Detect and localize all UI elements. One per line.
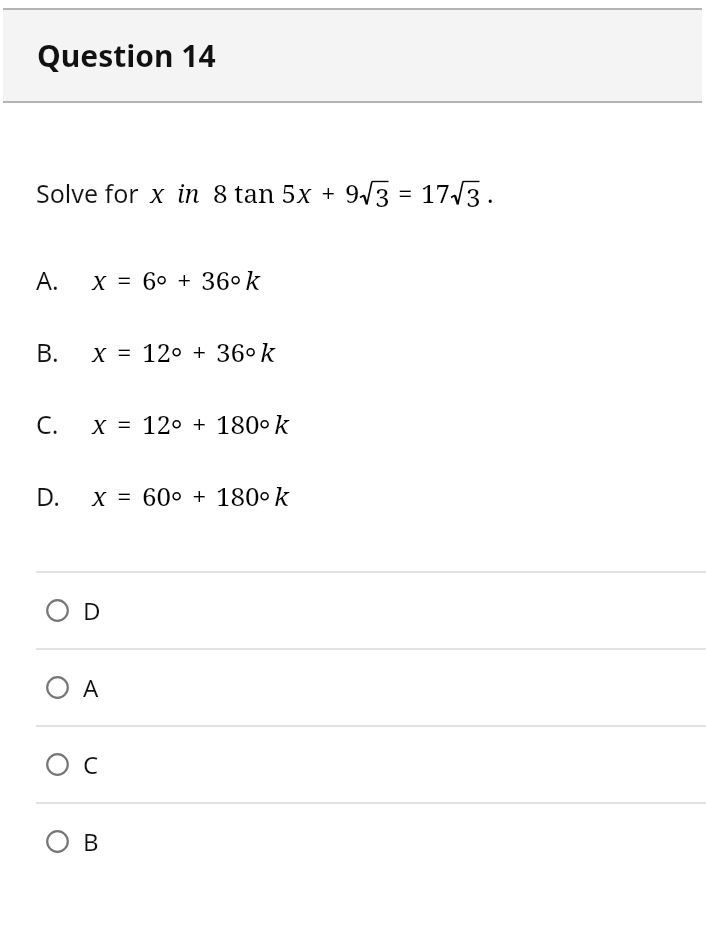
staticText: B: [83, 825, 99, 858]
staticText: +: [192, 478, 207, 513]
button[interactable]: D: [0, 573, 706, 648]
button[interactable]: Question 14: [3, 8, 702, 103]
staticText: =: [117, 406, 132, 441]
staticText: 180: [216, 406, 260, 441]
staticText: +: [177, 262, 192, 297]
staticText: k: [274, 478, 289, 513]
staticText: 60: [142, 478, 172, 513]
staticText: =: [117, 262, 132, 297]
staticText: 6: [142, 262, 157, 297]
staticText: B.: [36, 335, 59, 369]
staticText: C: [83, 748, 99, 781]
staticText: 12: [142, 406, 172, 441]
staticText: =: [117, 334, 132, 369]
staticText: +: [192, 334, 207, 369]
staticText: k: [274, 406, 289, 441]
staticText: 17: [421, 175, 451, 210]
button[interactable]: B: [0, 804, 706, 879]
staticText: 12: [142, 334, 172, 369]
staticText: 3: [375, 179, 390, 207]
staticText: =: [117, 478, 132, 513]
staticText: +: [321, 175, 336, 210]
staticText: k: [260, 334, 275, 369]
staticText: x: [92, 334, 107, 369]
staticText: x: [297, 175, 312, 210]
staticText: A.: [36, 263, 59, 297]
staticText: +: [192, 406, 207, 441]
staticText: A: [83, 671, 99, 704]
staticText: 3: [466, 179, 481, 207]
staticText: =: [398, 175, 413, 210]
staticText: x: [92, 262, 107, 297]
staticText: C.: [36, 407, 59, 441]
button[interactable]: A: [0, 650, 706, 725]
staticText: in: [177, 176, 200, 210]
staticText: 36: [201, 262, 231, 297]
staticText: x: [92, 478, 107, 513]
staticText: 9: [345, 175, 360, 210]
button[interactable]: C: [0, 727, 706, 802]
staticText: 36: [216, 334, 246, 369]
staticText: 8 tan 5: [213, 175, 297, 210]
staticText: .: [487, 175, 494, 210]
staticText: D.: [36, 479, 60, 513]
staticText: k: [245, 262, 260, 297]
staticText: x: [150, 175, 165, 210]
staticText: D: [83, 594, 101, 627]
staticText: Question 14: [37, 35, 216, 76]
staticText: 180: [216, 478, 260, 513]
staticText: Solve for: [36, 176, 139, 210]
staticText: x: [92, 406, 107, 441]
